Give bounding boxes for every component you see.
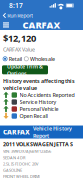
button[interactable]: Run Report: [0, 11, 36, 20]
staticText: SEDAN 4 DR: [3, 155, 25, 160]
staticText: CARFAX: [22, 19, 60, 31]
button[interactable]: Personal Vehicle: [0, 105, 83, 112]
button[interactable]: Wholesale: [24, 55, 55, 62]
staticText: Personal Vehicle: [20, 105, 59, 113]
staticText: $12,120: [3, 32, 36, 44]
staticText: No Accidents Reported: [20, 91, 75, 99]
button[interactable]: Menu: [0, 19, 12, 31]
staticText: FRONT WHEEL DRIVE: [3, 174, 40, 179]
button[interactable]: Service History: [0, 98, 83, 105]
staticText: 8:17: [9, 1, 23, 10]
staticText: VIN: 3VWDX7AJ6BM123456: [3, 149, 51, 154]
staticText: Update Trim & Options: [7, 63, 43, 77]
button[interactable]: Retail: [3, 55, 22, 62]
staticText: Service History: [20, 98, 57, 106]
button[interactable]: Update Trim & Options: [2, 65, 48, 74]
staticText: 2011 VOLKSWAGEN JETTA S: [3, 140, 73, 148]
button[interactable]: Open Recall: [0, 112, 83, 119]
staticText: 2.5L I5 FI DOHC 20V: [3, 161, 38, 166]
staticText: CARFAX Value: [3, 46, 35, 53]
staticText: Vehicle History Report: [33, 125, 72, 139]
staticText: Retail: [9, 55, 22, 62]
staticText: GASOLINE: [3, 167, 22, 173]
button[interactable]: No Accidents Reported: [0, 91, 83, 98]
staticText: Open Recall: [20, 112, 48, 120]
staticText: History events affecting this vehicle va…: [3, 77, 75, 92]
staticText: Run Report: [7, 12, 33, 19]
staticText: CARFAX: [3, 128, 30, 136]
staticText: Wholesale: [30, 55, 55, 62]
